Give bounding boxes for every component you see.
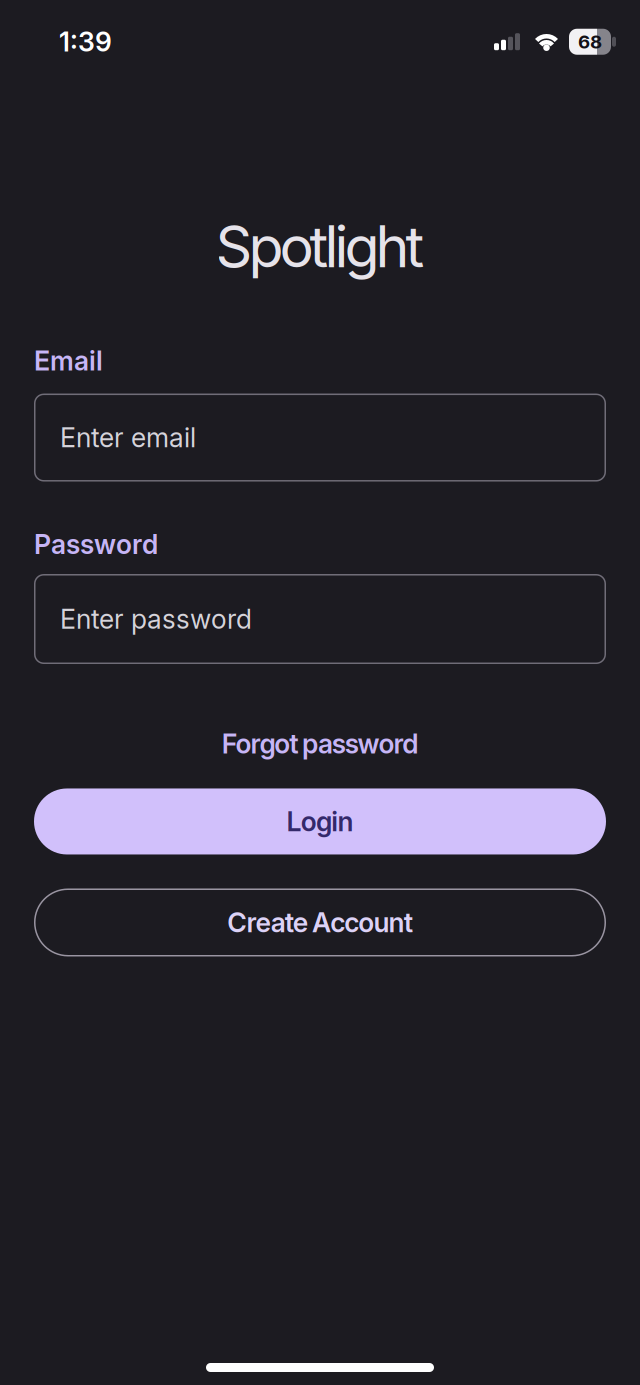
button[interactable]: Enter email	[34, 394, 606, 482]
button[interactable]: Forgot password	[222, 728, 418, 759]
button[interactable]: Enter password	[34, 574, 606, 664]
staticText: 68	[578, 31, 602, 53]
staticText: Create Account	[227, 907, 413, 938]
staticText: Email	[34, 345, 103, 377]
staticText: Enter password	[60, 603, 252, 635]
staticText: 1:39	[59, 26, 112, 57]
staticText: Forgot password	[222, 728, 418, 759]
staticText: Login	[287, 806, 353, 837]
staticText: Password	[34, 529, 158, 560]
button[interactable]: Login	[34, 788, 606, 854]
staticText: Enter email	[60, 422, 196, 453]
staticText: Spotlight	[215, 212, 424, 280]
button[interactable]: Create Account	[34, 888, 606, 956]
